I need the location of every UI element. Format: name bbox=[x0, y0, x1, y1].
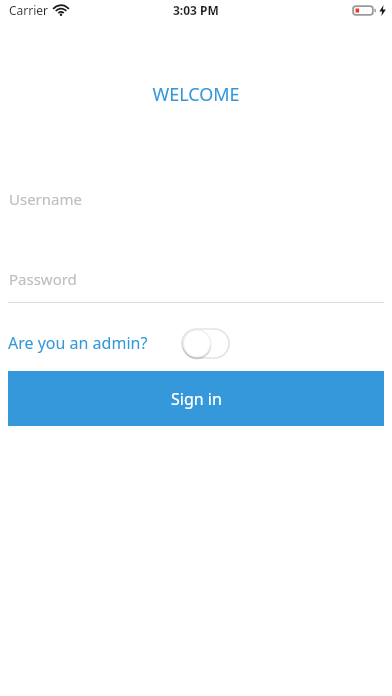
staticText: 3:03 PM bbox=[173, 2, 219, 18]
staticText: Password bbox=[9, 269, 77, 289]
button[interactable]: Are you an admin toggle, off bbox=[182, 329, 229, 358]
button[interactable]: Username bbox=[0, 182, 392, 216]
staticText: Sign in bbox=[171, 388, 222, 410]
button[interactable]: Password bbox=[0, 262, 392, 303]
staticText: Carrier bbox=[9, 2, 49, 18]
staticText: Username bbox=[9, 189, 82, 209]
button[interactable]: Sign in bbox=[8, 371, 384, 426]
staticText: Are you an admin? bbox=[8, 332, 148, 354]
staticText: WELCOME bbox=[0, 82, 392, 107]
